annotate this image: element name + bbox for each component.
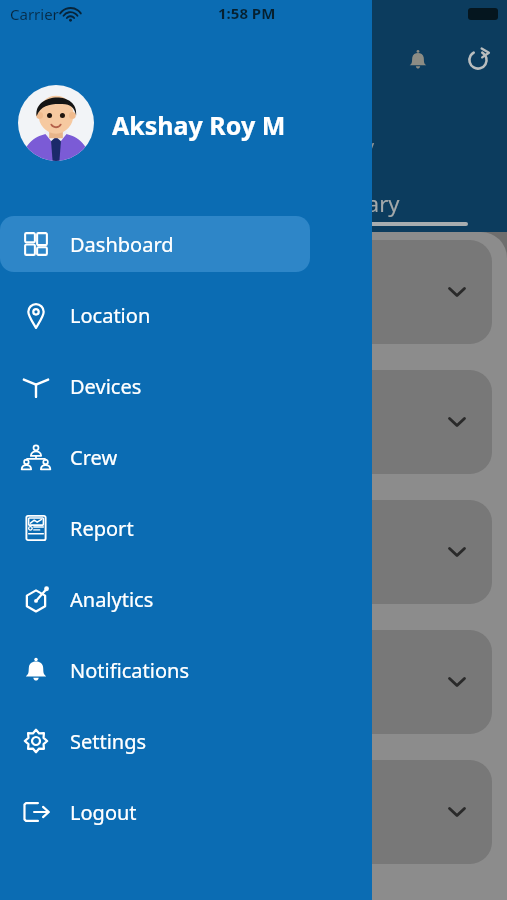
staticText: Analytics [70, 586, 154, 613]
button[interactable] [16, 370, 492, 474]
staticText: Thursday [300, 134, 375, 157]
staticText: Dashboard [70, 231, 174, 258]
button[interactable]: Devices [0, 358, 310, 414]
button[interactable]: Logout [0, 784, 310, 840]
button[interactable] [16, 240, 492, 344]
button[interactable] [16, 500, 492, 604]
button[interactable]: Refresh [458, 40, 498, 80]
staticText: Logout [70, 799, 137, 826]
button[interactable]: Summary [300, 188, 400, 218]
button[interactable]: Notifications [398, 40, 438, 80]
button[interactable]: Location [0, 287, 310, 343]
staticText: Summary [300, 188, 400, 218]
staticText: Location [70, 302, 151, 329]
button[interactable]: Settings [0, 713, 310, 769]
staticText: Carrier [10, 4, 59, 24]
button[interactable]: Crew [0, 429, 310, 485]
staticText: Settings [70, 728, 147, 755]
button[interactable]: Dashboard [0, 216, 310, 272]
staticText: Akshay Roy M [112, 108, 286, 142]
staticText: Devices [70, 373, 142, 400]
button[interactable]: Report [0, 500, 310, 556]
button[interactable] [16, 760, 492, 864]
staticText: Report [70, 515, 134, 542]
button[interactable]: Analytics [0, 571, 310, 627]
staticText: 1:58 PM [218, 3, 276, 23]
button[interactable] [16, 630, 492, 734]
staticText: Notifications [70, 657, 189, 684]
button[interactable]: Notifications [0, 642, 310, 698]
staticText: Crew [70, 444, 118, 471]
